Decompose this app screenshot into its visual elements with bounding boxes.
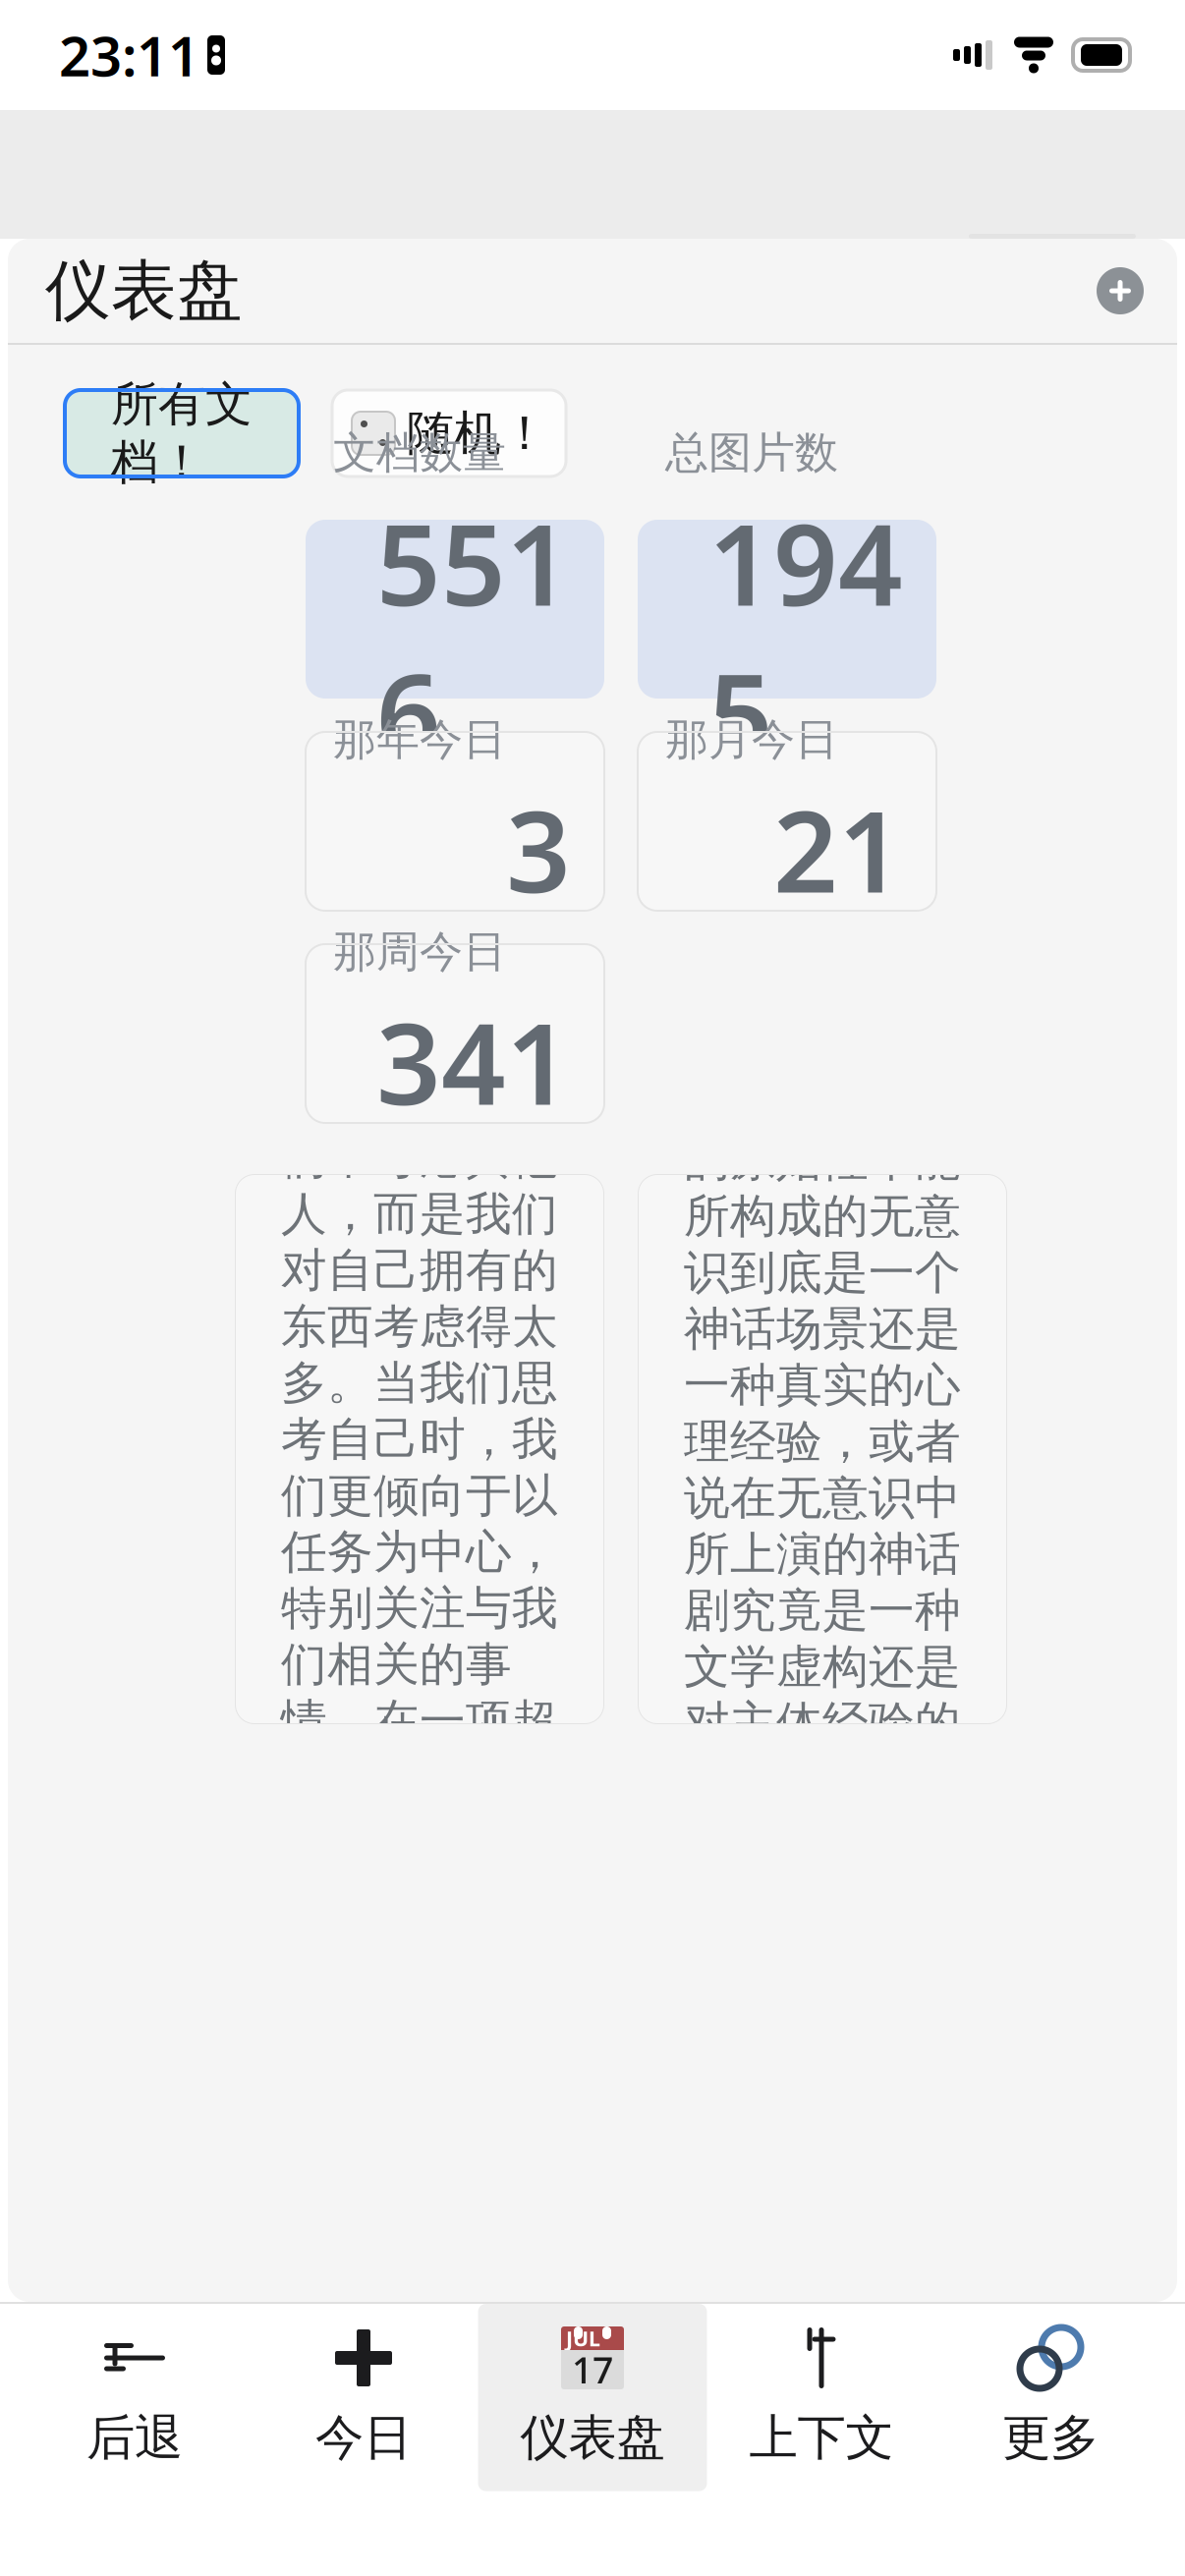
staticText: 3 [506, 774, 571, 924]
staticText: 那周今日 [333, 925, 506, 978]
button[interactable]: 所有文档！ [65, 390, 299, 476]
button[interactable]: 那月今日 [638, 732, 936, 911]
staticText: 17 [572, 2345, 613, 2394]
staticText: 弗洛伊德为什么非要用性本能来装扮无意识？由被压抑的原始性本能所构成的无意识到底是… [684, 907, 961, 2033]
button[interactable]: 那年今日 [306, 732, 604, 911]
button[interactable]: 上下文 [707, 2304, 936, 2491]
staticText: 上下文 [749, 2408, 894, 2468]
button[interactable]: 文档数量 [306, 520, 604, 699]
button[interactable]: 随机！ [332, 390, 566, 476]
staticText: 5516 [376, 487, 571, 786]
button[interactable]: 后退 [20, 2304, 249, 2491]
staticText: JUL [566, 2324, 600, 2352]
staticText: 341 [376, 986, 571, 1136]
staticText: 随机！ [407, 404, 548, 462]
staticText: 我们不太愿意分享我们的所有物的原因之一，并不是我们不考虑其他人，而是我们对自己拥… [281, 904, 558, 2035]
button[interactable]: 总图片数 [638, 520, 936, 699]
staticText: 今日 [315, 2408, 412, 2468]
staticText: 文档数量 [333, 426, 506, 479]
button[interactable]: 今日 [249, 2304, 478, 2491]
button[interactable]: JUL [478, 2304, 707, 2491]
staticText: 23:11 [59, 18, 199, 92]
staticText: 1945 [708, 487, 903, 786]
staticText: 更多 [1002, 2408, 1099, 2468]
staticText: 那年今日 [333, 713, 506, 766]
staticText: 总图片数 [665, 426, 838, 479]
staticText: 仪表盘 [520, 2408, 665, 2468]
staticText: 后退 [86, 2408, 183, 2468]
staticText: 所有文档！ [111, 375, 253, 491]
button[interactable]: 我们不太愿意分享我们的所有物的原因之一，并不是我们不考虑其他人，而是我们对自己拥… [235, 1174, 604, 1724]
button[interactable]: 更多 [936, 2304, 1165, 2491]
staticText: 那月今日 [665, 713, 838, 766]
button[interactable]: 那周今日 [306, 944, 604, 1123]
staticText: 仪表盘 [45, 251, 243, 331]
button[interactable]: 弗洛伊德为什么非要用性本能来装扮无意识？由被压抑的原始性本能所构成的无意识到底是… [638, 1174, 1007, 1724]
button[interactable]: 关闭 [1081, 252, 1159, 330]
staticText: 21 [773, 774, 903, 924]
